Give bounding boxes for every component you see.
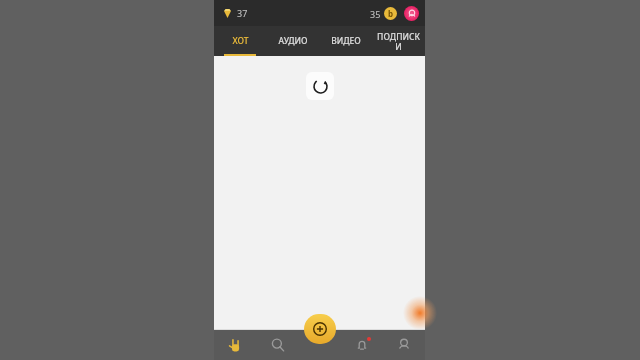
staticText: b (388, 8, 394, 19)
button[interactable]: ХОТ (214, 26, 266, 56)
button[interactable]: Create (304, 314, 336, 344)
staticText: 37 (237, 7, 248, 19)
staticText: 35 (370, 8, 381, 20)
button[interactable]: Gems (222, 5, 248, 21)
staticText: АУДИО (278, 35, 308, 47)
button[interactable]: Hot (214, 330, 257, 360)
other: Gems (222, 8, 233, 19)
button[interactable]: ПОДПИСКИ (372, 26, 425, 56)
button[interactable]: Profile (404, 6, 419, 21)
button[interactable]: АУДИО (266, 26, 319, 56)
staticText: ВИДЕО (331, 35, 361, 47)
staticText: ПОДПИСКИ (374, 31, 423, 52)
staticText: ХОТ (232, 35, 249, 47)
button[interactable]: Profile (383, 330, 425, 360)
button[interactable]: Search (257, 330, 299, 360)
button[interactable]: ВИДЕО (319, 26, 372, 56)
button[interactable]: Notifications (341, 330, 383, 360)
button[interactable]: 35 (368, 5, 399, 22)
